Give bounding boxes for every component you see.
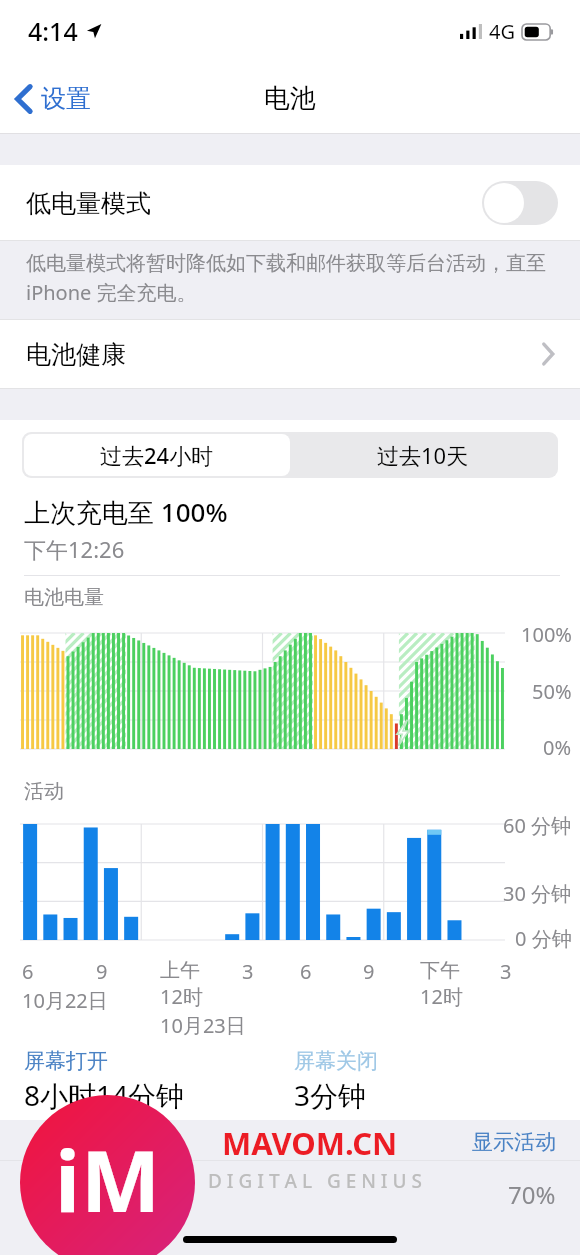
staticText: i xyxy=(55,1122,81,1236)
button[interactable]: 低电量模式 xyxy=(0,165,580,241)
staticText: 上午 xyxy=(160,958,200,983)
staticText: 低电量模式 xyxy=(26,188,151,219)
button[interactable]: 显示活动 xyxy=(0,1120,580,1164)
button[interactable]: Low Power Mode toggle xyxy=(482,181,558,225)
button[interactable]: 过去10天 xyxy=(290,434,556,476)
staticText: 3 xyxy=(242,958,254,985)
button[interactable]: 过去24小时 xyxy=(24,434,290,476)
staticText: iPhone 完全充电。 xyxy=(26,279,197,306)
staticText: MAVOM.CN xyxy=(222,1122,398,1164)
staticText: 0% xyxy=(543,734,572,761)
staticText: 下午12:26 xyxy=(24,534,125,564)
staticText: 50% xyxy=(532,678,572,705)
staticText: 3 xyxy=(500,958,512,985)
staticText: 活动 xyxy=(24,779,64,804)
staticText: 过去10天 xyxy=(377,440,469,470)
staticText: 显示活动 xyxy=(472,1129,556,1155)
staticText: 8小时14分钟 xyxy=(24,1076,185,1114)
staticText: 6 xyxy=(22,958,34,985)
staticText: 屏幕关闭 xyxy=(294,1048,378,1074)
staticText: M xyxy=(81,1122,161,1236)
staticText: 30 分钟 xyxy=(503,880,572,907)
staticText: 电池健康 xyxy=(26,339,126,370)
staticText: 12时 xyxy=(420,983,463,1010)
staticText: 屏幕打开 xyxy=(24,1048,108,1074)
staticText: 9 xyxy=(96,958,108,985)
button[interactable]: 设置 xyxy=(0,75,105,122)
staticText: 6 xyxy=(300,958,312,985)
staticText: 电池 xyxy=(264,82,316,115)
staticText: 4:14 xyxy=(28,14,78,48)
staticText: 设置 xyxy=(41,83,91,114)
staticText: 下午 xyxy=(420,958,460,983)
staticText: 9 xyxy=(363,958,375,985)
staticText: 上次充电至 100% xyxy=(24,494,228,530)
button[interactable]: 电池健康 xyxy=(0,319,580,389)
staticText: 3分钟 xyxy=(294,1076,367,1114)
staticText: 10月23日 xyxy=(160,1012,246,1039)
staticText: 60 分钟 xyxy=(503,812,572,839)
staticText: 10月22日 xyxy=(22,987,108,1014)
staticText: 低电量模式将暂时降低如下载和邮件获取等后台活动，直至 xyxy=(26,251,546,276)
staticText: 12时 xyxy=(160,983,203,1010)
staticText: 0 分钟 xyxy=(515,925,572,952)
staticText: 100% xyxy=(521,621,572,648)
staticText: 电池电量 xyxy=(24,585,104,610)
staticText: 过去24小时 xyxy=(100,440,214,470)
staticText: 4G xyxy=(489,18,515,45)
staticText: D I G I T A L G E N I U S xyxy=(208,1168,422,1194)
staticText: 70% xyxy=(508,1178,556,1211)
